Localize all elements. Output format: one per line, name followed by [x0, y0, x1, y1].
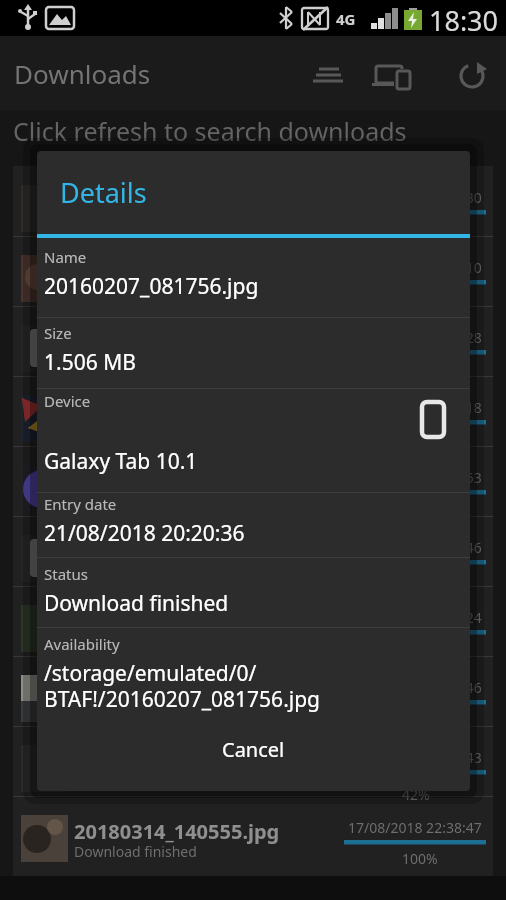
staticText: 4G: [336, 9, 356, 29]
staticText: 20160207_081756.jpg: [44, 272, 259, 301]
staticText: Download finished: [44, 589, 229, 618]
staticText: Click refresh to search downloads: [13, 114, 407, 148]
staticText: 21/08/2018 20:20:36: [44, 519, 245, 548]
staticText: 18/08/2018 22:51:24: [348, 608, 482, 626]
staticText: 18/08/2018 11:36:46: [348, 678, 482, 696]
button[interactable]: [440, 56, 496, 96]
staticText: 21/08/2018 20:19:10: [348, 258, 482, 276]
staticText: Downloads: [14, 56, 151, 91]
staticText: Status: [44, 564, 88, 584]
staticText: Download finished: [74, 842, 197, 861]
staticText: Details: [60, 174, 147, 211]
staticText: Entry date: [44, 494, 117, 514]
button[interactable]: Cancel: [37, 721, 470, 777]
staticText: 42%: [402, 785, 430, 804]
staticText: 17/08/2018 22:38:47: [348, 818, 482, 836]
staticText: 19/08/2018 21:30:53: [348, 468, 482, 486]
staticText: 20180314_140555.jpg: [74, 818, 280, 845]
staticText: 20/08/2018 17:44:18: [348, 398, 482, 416]
staticText: BTAF!/20160207_081756.jpg: [44, 685, 321, 714]
button[interactable]: [13, 796, 493, 876]
staticText: 21/08/2018 20:20:30: [348, 188, 482, 206]
staticText: Size: [44, 323, 72, 343]
staticText: Galaxy Tab 10.1: [44, 447, 198, 476]
staticText: 18:30: [429, 2, 499, 38]
staticText: /storage/emulated/0/: [44, 659, 257, 688]
button[interactable]: [300, 56, 356, 96]
staticText: Device: [44, 391, 91, 411]
staticText: Name: [44, 247, 87, 267]
staticText: Cancel: [222, 736, 285, 763]
staticText: 19/08/2018 10:12:46: [348, 538, 482, 556]
staticText: Availability: [44, 634, 120, 654]
staticText: 100%: [402, 849, 438, 868]
staticText: 17/08/2018 23:02:43: [348, 748, 482, 766]
staticText: 20/08/2018 18:05:28: [348, 328, 482, 346]
staticText: 1.506 MB: [44, 348, 136, 377]
button[interactable]: [366, 56, 422, 96]
